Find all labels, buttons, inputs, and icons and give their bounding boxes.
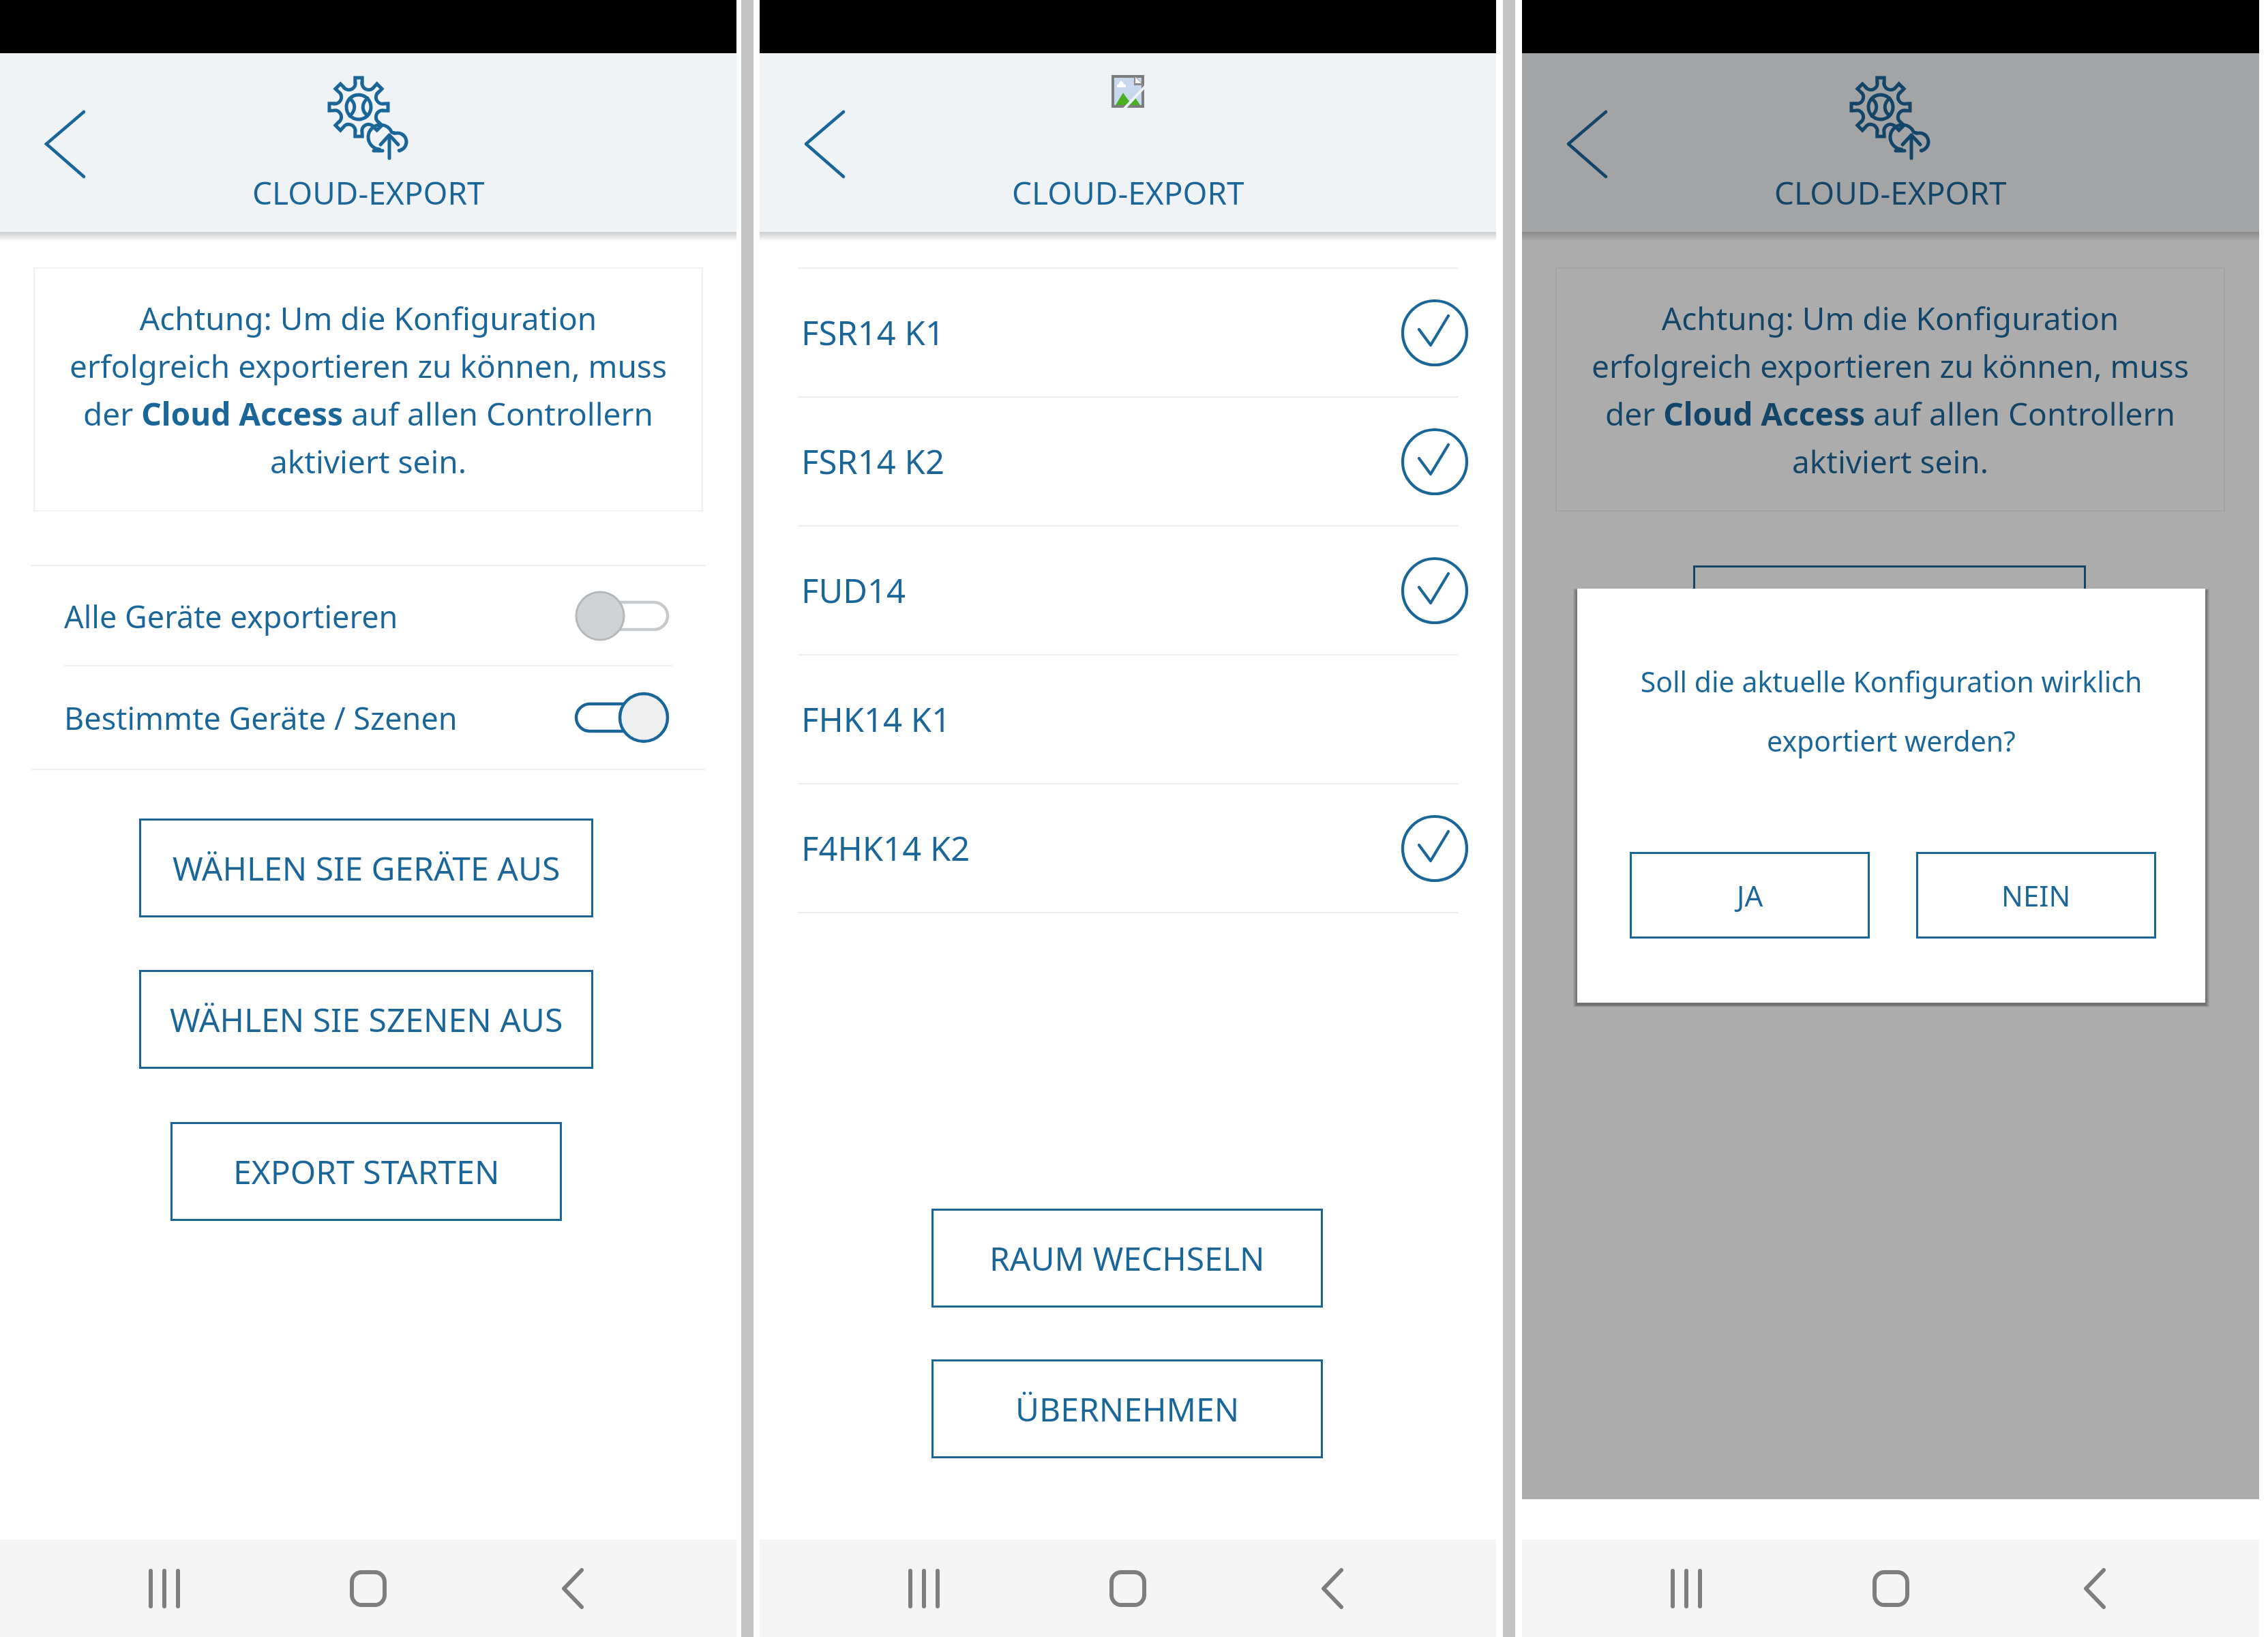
button[interactable]: WÄHLEN SIE GERÄTE AUS bbox=[1693, 565, 2086, 664]
staticText: NEIN bbox=[2001, 876, 2071, 915]
button[interactable]: FUD14 bbox=[760, 527, 1496, 654]
staticText: FHK14 K1 bbox=[801, 696, 951, 742]
staticText: Soll die aktuelle Konfiguration wirklich… bbox=[1577, 662, 2205, 760]
button[interactable]: WÄHLEN SIE SZENEN AUS bbox=[139, 970, 593, 1069]
button[interactable]: Home bbox=[1851, 1548, 1931, 1629]
button[interactable]: Back bbox=[2055, 1548, 2135, 1629]
button[interactable]: Recent apps bbox=[124, 1548, 205, 1629]
button[interactable]: JA bbox=[1630, 852, 1870, 939]
staticText: Alle Geräte exportieren bbox=[64, 595, 398, 637]
button[interactable]: Recent apps bbox=[1646, 1548, 1727, 1629]
button[interactable]: Bestimmte Geräte / Szenen bbox=[0, 666, 736, 769]
button[interactable]: Back bbox=[27, 91, 104, 168]
button[interactable]: Home bbox=[328, 1548, 408, 1629]
staticText: FSR14 K1 bbox=[801, 310, 944, 355]
button[interactable]: Back bbox=[1549, 91, 1626, 168]
button[interactable]: WÄHLEN SIE GERÄTE AUS bbox=[139, 818, 593, 917]
button[interactable]: Back bbox=[787, 91, 863, 168]
staticText: CLOUD-EXPORT bbox=[1774, 171, 2007, 214]
staticText: JA bbox=[1737, 876, 1763, 915]
button[interactable]: Home bbox=[1088, 1548, 1168, 1629]
staticText: Bestimmte Geräte / Szenen bbox=[64, 697, 458, 739]
button[interactable]: Back bbox=[533, 1548, 613, 1629]
staticText: F4HK14 K2 bbox=[801, 825, 970, 871]
staticText: ÜBERNEHMEN bbox=[1015, 1387, 1240, 1431]
staticText: Achtung: Um die Konfiguration erfolgreic… bbox=[1555, 297, 2225, 482]
button[interactable]: FSR14 K1 bbox=[760, 269, 1496, 396]
button[interactable]: Alle Geräte exportieren bbox=[0, 566, 736, 666]
button[interactable]: FSR14 K2 bbox=[760, 398, 1496, 525]
button[interactable]: RAUM WECHSELN bbox=[931, 1209, 1323, 1308]
staticText: WÄHLEN SIE GERÄTE AUS bbox=[173, 846, 561, 890]
staticText: WÄHLEN SIE SZENEN AUS bbox=[170, 997, 563, 1042]
button[interactable]: NEIN bbox=[1916, 852, 2156, 939]
staticText: CLOUD-EXPORT bbox=[252, 171, 485, 214]
button[interactable]: FHK14 K1 bbox=[760, 655, 1496, 783]
button[interactable]: Recent apps bbox=[884, 1548, 964, 1629]
staticText: RAUM WECHSELN bbox=[989, 1236, 1265, 1280]
staticText: CLOUD-EXPORT bbox=[1012, 171, 1244, 214]
button[interactable]: ÜBERNEHMEN bbox=[931, 1359, 1323, 1458]
staticText: FSR14 K2 bbox=[801, 439, 944, 484]
button[interactable]: F4HK14 K2 bbox=[760, 784, 1496, 912]
staticText: FUD14 bbox=[801, 567, 906, 613]
button[interactable]: EXPORT STARTEN bbox=[170, 1122, 562, 1221]
staticText: Achtung: Um die Konfiguration erfolgreic… bbox=[33, 297, 703, 482]
staticText: EXPORT STARTEN bbox=[233, 1149, 500, 1194]
button[interactable]: Back bbox=[1292, 1548, 1373, 1629]
